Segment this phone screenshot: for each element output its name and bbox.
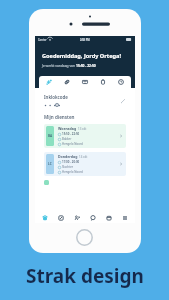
staticText: Mijn diensten bbox=[44, 114, 75, 120]
button[interactable]: Link bbox=[59, 76, 75, 88]
button[interactable]: BA bbox=[44, 124, 126, 148]
button[interactable]: Info bbox=[113, 76, 129, 88]
staticText: Hengelo Noord bbox=[62, 170, 83, 174]
staticText: BA bbox=[48, 134, 53, 138]
staticText: 2:58 PM bbox=[80, 38, 90, 41]
button[interactable]: Home bbox=[38, 212, 52, 223]
button[interactable]: Calendar bbox=[102, 212, 116, 223]
staticText: 15:50 - 22:50 bbox=[76, 63, 96, 67]
staticText: 17:00 - 20:00 bbox=[62, 160, 80, 164]
staticText: Slachter bbox=[62, 165, 73, 169]
staticText: 15:50 - 22:50 bbox=[62, 132, 80, 136]
staticText: Strak design bbox=[26, 263, 144, 289]
staticText: Goedemiddag, Jordy Ortega! bbox=[42, 52, 121, 60]
button[interactable]: Edit bbox=[120, 98, 126, 104]
button[interactable]: Home bbox=[76, 229, 93, 246]
staticText: Hengelo Noord bbox=[62, 142, 83, 146]
button[interactable]: Contacts bbox=[70, 212, 84, 223]
staticText: Carrier bbox=[38, 38, 47, 41]
button[interactable]: LC bbox=[44, 152, 126, 176]
button[interactable]: Mail bbox=[77, 76, 93, 88]
button[interactable]: Inklokcode bbox=[44, 94, 126, 107]
button[interactable]: Chat bbox=[86, 212, 100, 223]
button[interactable]: Show code bbox=[55, 103, 59, 107]
button[interactable]: Documents bbox=[95, 76, 111, 88]
staticText: 13 okt bbox=[78, 127, 87, 131]
staticText: LC bbox=[48, 162, 52, 166]
staticText: Bakker bbox=[62, 137, 72, 141]
button[interactable]: Menu bbox=[118, 212, 132, 223]
button[interactable]: Edit bbox=[54, 212, 68, 223]
staticText: Je werkt vandaag van bbox=[42, 63, 76, 67]
staticText: Woensdag bbox=[58, 126, 78, 131]
staticText: 14 okt bbox=[79, 155, 88, 159]
staticText: Donderdag bbox=[58, 154, 79, 159]
button[interactable]: Magic bbox=[41, 76, 57, 88]
staticText: Inklokcode bbox=[44, 94, 68, 100]
